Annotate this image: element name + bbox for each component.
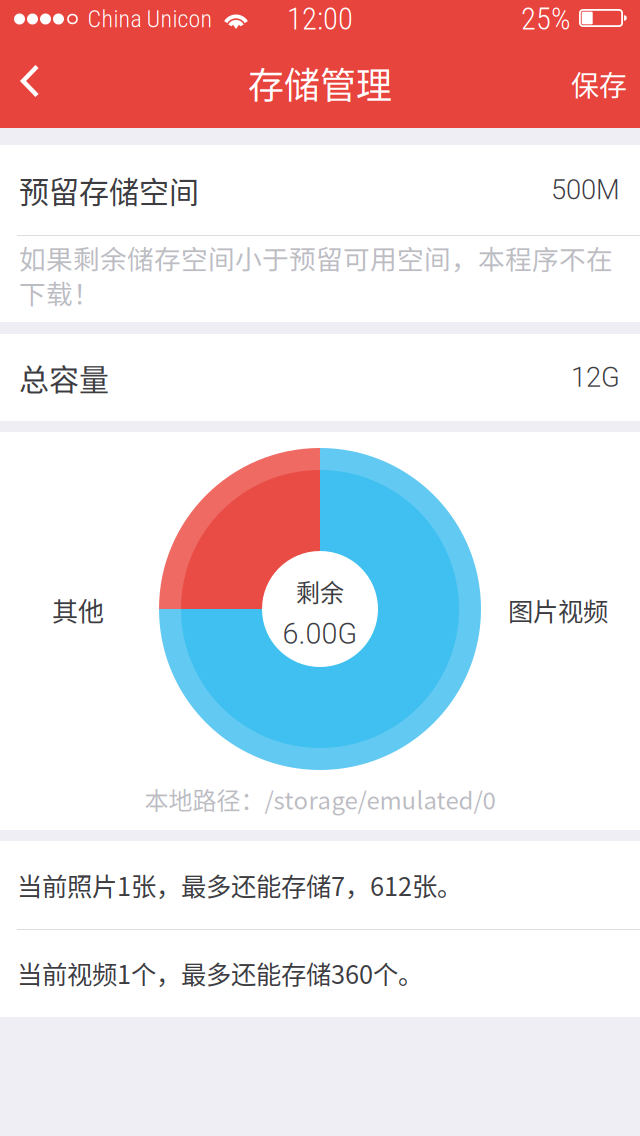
staticText: China Unicon	[87, 5, 212, 33]
button[interactable]: Back	[0, 40, 72, 128]
staticText: 剩余	[296, 574, 344, 608]
staticText: 总容量	[19, 356, 109, 399]
button[interactable]: 保存	[537, 40, 640, 128]
staticText: 6.00G	[282, 617, 357, 651]
staticText: 如果剩余储存空间小于预留可用空间，本程序不在下载！	[19, 238, 613, 312]
staticText: 当前视频1个，最多还能存储360个。	[17, 955, 423, 991]
staticText: 500M	[551, 174, 620, 206]
staticText: 12:00	[287, 1, 353, 37]
staticText: 其他	[52, 591, 104, 629]
staticText: 25%	[521, 1, 571, 37]
staticText: 预留存储空间	[19, 168, 199, 212]
staticText: 本地路径：/storage/emulated/0	[144, 782, 495, 816]
staticText: 12G	[571, 361, 620, 393]
staticText: 当前照片1张，最多还能存储7，612张。	[17, 867, 462, 903]
staticText: 存储管理	[248, 57, 392, 109]
staticText: 保存	[571, 64, 627, 104]
staticText: 图片视频	[508, 592, 608, 628]
